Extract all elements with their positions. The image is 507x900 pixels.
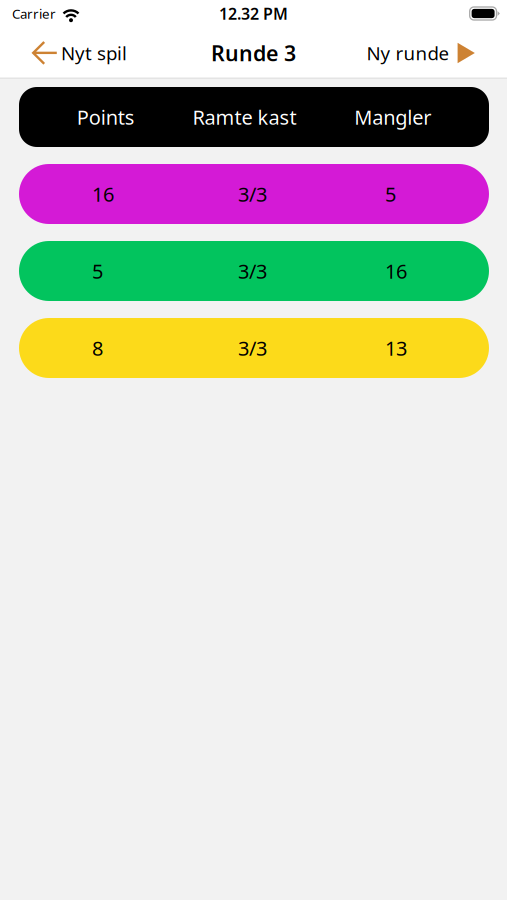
button[interactable]: Nyt spil [0, 30, 137, 75]
button[interactable]: 16 [19, 164, 489, 224]
staticText: 5 [92, 258, 103, 284]
staticText: 3/3 [238, 258, 267, 284]
staticText: Mangler [354, 104, 431, 130]
button[interactable]: 8 [19, 318, 489, 378]
staticText: 12.32 PM [219, 3, 288, 24]
staticText: 5 [385, 181, 396, 207]
staticText: 3/3 [238, 335, 267, 361]
staticText: 13 [385, 335, 407, 361]
staticText: Points [77, 104, 135, 130]
staticText: 16 [385, 258, 407, 284]
staticText: 16 [92, 181, 114, 207]
staticText: Nyt spil [61, 41, 127, 65]
button[interactable]: 5 [19, 241, 489, 301]
staticText: Runde 3 [211, 39, 296, 67]
staticText: 8 [92, 335, 103, 361]
staticText: Ramte kast [192, 104, 296, 130]
staticText: Carrier [12, 5, 56, 22]
staticText: Ny runde [366, 41, 449, 65]
button[interactable]: Ny runde [356, 30, 507, 75]
staticText: 3/3 [238, 181, 267, 207]
